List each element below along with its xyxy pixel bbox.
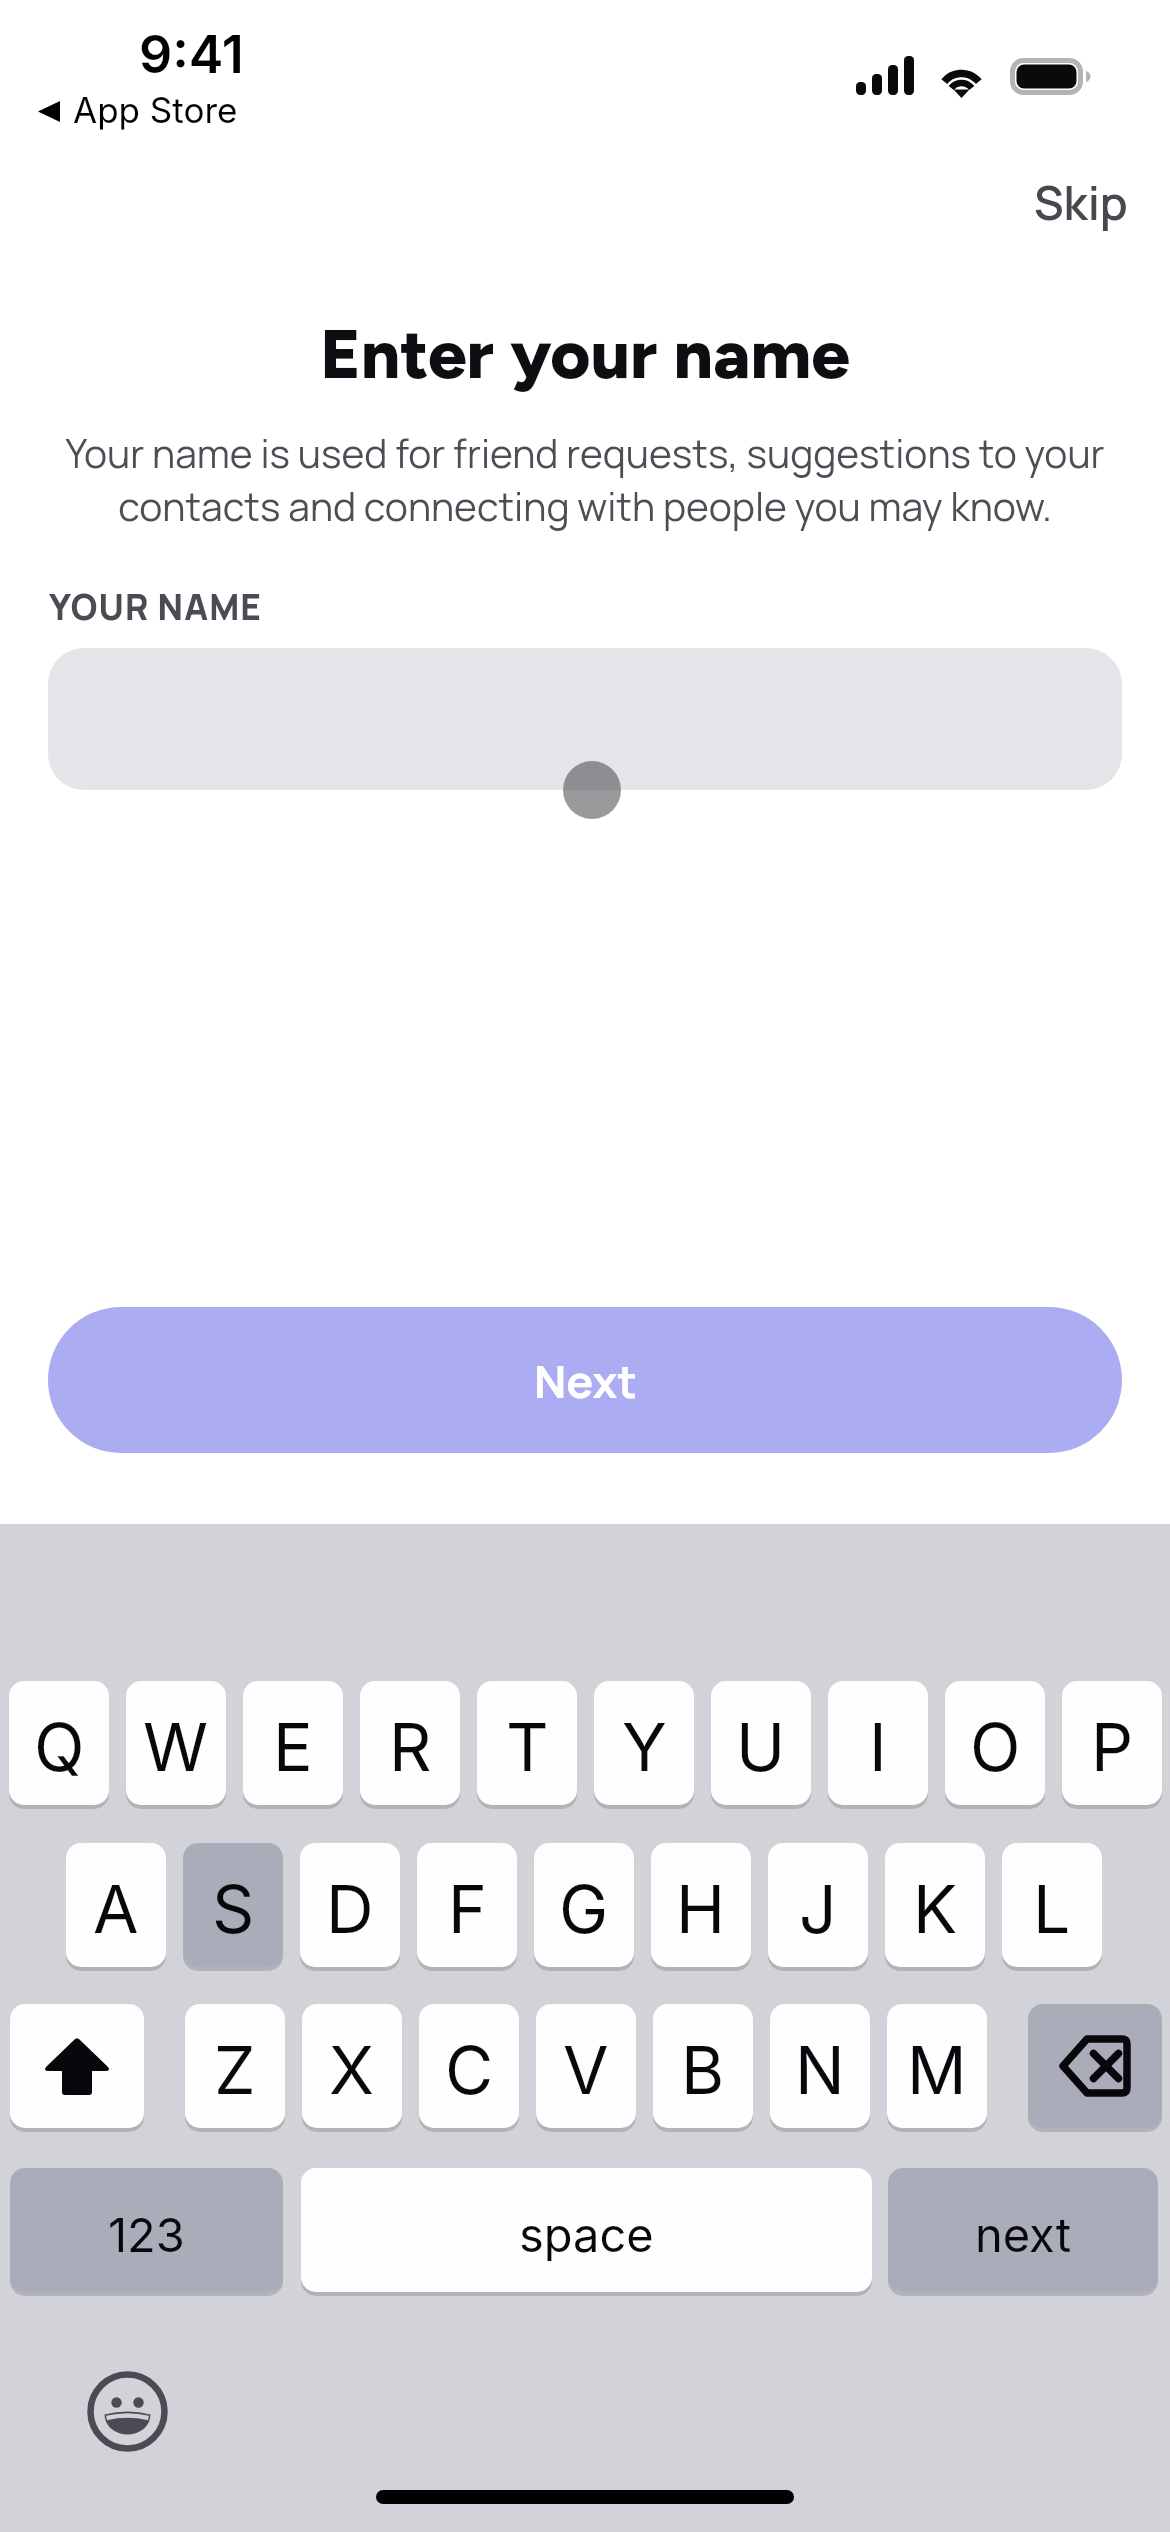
staticText: W — [143, 1707, 209, 1787]
staticText: V — [563, 2030, 609, 2110]
staticText: Your name is used for friend requests, s… — [56, 426, 1114, 533]
button[interactable]: Shift — [10, 2004, 144, 2128]
staticText: App Store — [73, 89, 238, 131]
staticText: J — [799, 1869, 837, 1949]
button[interactable]: G — [534, 1843, 634, 1967]
staticText: S — [212, 1869, 255, 1949]
button[interactable]: F — [417, 1843, 517, 1967]
staticText: F — [448, 1869, 487, 1949]
button[interactable]: A — [66, 1843, 166, 1967]
staticText: D — [326, 1869, 374, 1949]
button[interactable]: Emoji keyboard — [84, 2368, 171, 2455]
button[interactable]: 123 — [10, 2168, 283, 2292]
button[interactable]: Backspace — [1028, 2004, 1162, 2128]
button[interactable]: V — [536, 2004, 636, 2128]
button[interactable]: Skip — [1008, 159, 1154, 246]
staticText: I — [869, 1707, 887, 1787]
staticText: E — [273, 1707, 313, 1787]
button[interactable]: Q — [9, 1681, 109, 1805]
staticText: YOUR NAME — [49, 583, 263, 631]
button[interactable]: U — [711, 1681, 811, 1805]
staticText: Enter your name — [0, 312, 1170, 395]
staticText: Q — [34, 1707, 85, 1787]
staticText: 123 — [108, 2206, 185, 2263]
staticText: M — [907, 2030, 967, 2110]
staticText: 9:41 — [139, 23, 244, 86]
button[interactable]: X — [302, 2004, 402, 2128]
staticText: U — [736, 1707, 786, 1787]
button[interactable]: Z — [185, 2004, 285, 2128]
button[interactable]: K — [885, 1843, 985, 1967]
staticText: B — [681, 2030, 725, 2110]
button[interactable]: E — [243, 1681, 343, 1805]
button[interactable]: C — [419, 2004, 519, 2128]
button[interactable] — [48, 648, 1122, 790]
button[interactable]: B — [653, 2004, 753, 2128]
button[interactable]: H — [651, 1843, 751, 1967]
button[interactable]: D — [300, 1843, 400, 1967]
button[interactable]: N — [770, 2004, 870, 2128]
staticText: Skip — [1034, 171, 1128, 234]
staticText: Z — [214, 2030, 256, 2110]
button[interactable]: M — [887, 2004, 987, 2128]
staticText: next — [975, 2206, 1072, 2263]
button[interactable]: L — [1002, 1843, 1102, 1967]
button[interactable]: S — [183, 1843, 283, 1967]
button[interactable]: Next — [48, 1307, 1122, 1453]
button[interactable]: T — [477, 1681, 577, 1805]
staticText: O — [970, 1707, 1021, 1787]
staticText: R — [389, 1707, 432, 1787]
staticText: space — [519, 2206, 654, 2263]
staticText: T — [506, 1707, 549, 1787]
staticText: N — [795, 2030, 845, 2110]
staticText: K — [913, 1869, 958, 1949]
button[interactable]: space — [301, 2168, 872, 2292]
staticText: Y — [622, 1707, 667, 1787]
button[interactable]: next — [888, 2168, 1158, 2292]
button[interactable]: J — [768, 1843, 868, 1967]
staticText: X — [329, 2030, 375, 2110]
staticText: H — [676, 1869, 726, 1949]
button[interactable]: W — [126, 1681, 226, 1805]
staticText: Next — [534, 1350, 637, 1411]
button[interactable]: R — [360, 1681, 460, 1805]
button[interactable]: Y — [594, 1681, 694, 1805]
staticText: L — [1033, 1869, 1071, 1949]
staticText: G — [559, 1869, 609, 1949]
staticText: C — [445, 2030, 494, 2110]
button[interactable]: O — [945, 1681, 1045, 1805]
button[interactable]: I — [828, 1681, 928, 1805]
button[interactable]: P — [1062, 1681, 1162, 1805]
staticText: A — [93, 1869, 139, 1949]
staticText: P — [1091, 1707, 1134, 1787]
